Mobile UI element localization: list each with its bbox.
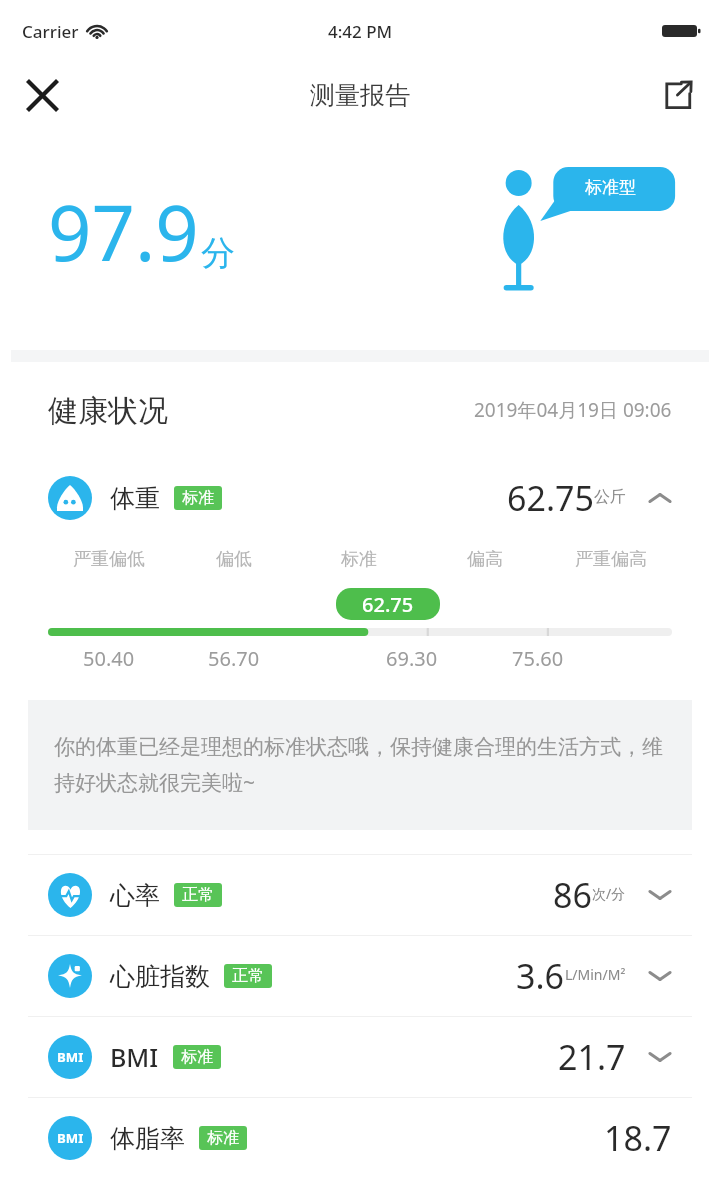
staticText: 62.75 <box>507 475 594 521</box>
staticText: 标准 <box>207 1128 239 1148</box>
staticText: 2019年04月19日 09:06 <box>474 397 672 423</box>
staticText: 正常 <box>182 885 214 905</box>
staticText: 分 <box>201 232 235 275</box>
staticText: 56.70 <box>208 645 260 672</box>
staticText: 标准 <box>181 1047 213 1067</box>
staticText: L/Min/M² <box>565 965 626 984</box>
staticText: 标准 <box>182 488 214 508</box>
staticText: 3.6 <box>516 953 565 999</box>
staticText: 健康状况 <box>48 392 168 430</box>
staticText: 偏低 <box>216 548 252 571</box>
button[interactable]: BMI <box>0 1098 720 1178</box>
button[interactable]: Close <box>14 67 70 123</box>
staticText: Carrier <box>22 20 79 43</box>
staticText: 心脏指数 <box>110 961 210 992</box>
staticText: 你的体重已经是理想的标准状态哦，保持健康合理的生活方式，维持好状态就很完美啦~ <box>54 734 666 796</box>
staticText: BMI <box>57 1129 84 1147</box>
staticText: 正常 <box>232 966 264 986</box>
button[interactable]: Share <box>650 67 706 123</box>
staticText: 50.40 <box>83 645 135 672</box>
button[interactable]: 心脏指数 <box>0 936 720 1016</box>
staticText: 标准 <box>341 548 377 571</box>
staticText: 75.60 <box>512 645 564 672</box>
staticText: 97.9 <box>48 180 199 284</box>
staticText: 体脂率 <box>110 1123 185 1154</box>
staticText: 严重偏高 <box>575 548 647 571</box>
staticText: 公斤 <box>594 487 626 507</box>
staticText: 体重 <box>110 483 160 514</box>
staticText: 心率 <box>110 880 160 911</box>
button[interactable]: 体重 <box>0 470 720 526</box>
button[interactable]: BMI <box>0 1017 720 1097</box>
staticText: 次/分 <box>592 884 626 903</box>
staticText: 测量报告 <box>310 80 410 111</box>
staticText: 18.7 <box>604 1115 672 1161</box>
staticText: BMI <box>110 1040 159 1074</box>
staticText: 69.30 <box>386 645 438 672</box>
staticText: 偏高 <box>467 548 503 571</box>
staticText: 62.75 <box>362 591 414 618</box>
staticText: 86 <box>553 872 592 918</box>
staticText: 4:42 PM <box>328 20 393 43</box>
staticText: 严重偏低 <box>73 548 145 571</box>
staticText: 标准型 <box>585 177 636 198</box>
staticText: 21.7 <box>558 1034 626 1080</box>
button[interactable]: 心率 <box>0 855 720 935</box>
staticText: BMI <box>57 1048 84 1066</box>
